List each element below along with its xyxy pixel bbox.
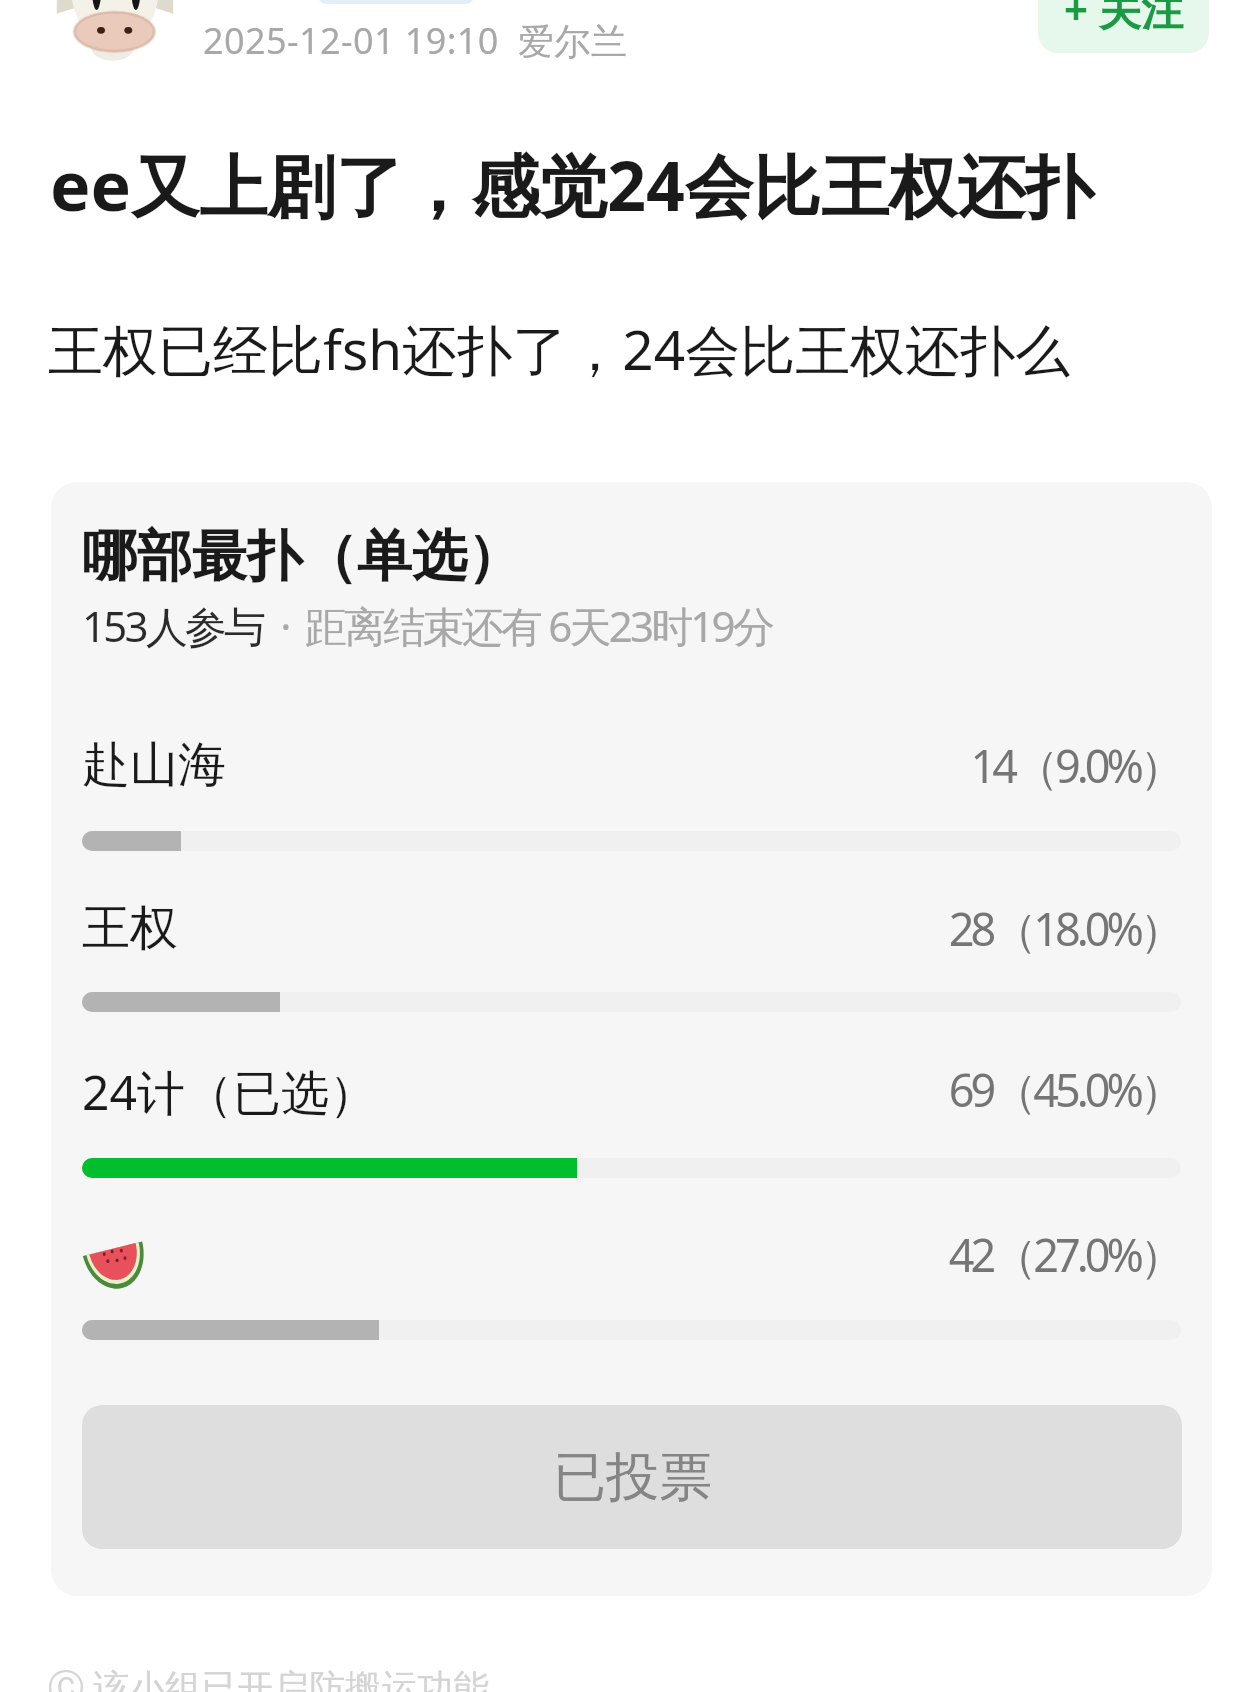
staticText: + 关注 [1064, 0, 1183, 37]
staticText: Ⓒ 该小组已开启防搬运功能 [48, 1662, 490, 1692]
staticText: 2025-12-01 19:10 爱尔兰 [203, 16, 628, 65]
button[interactable]: 王权 [82, 898, 1181, 1028]
button[interactable]: 已投票 [82, 1405, 1182, 1549]
staticText: 王权已经比fsh还扑了，24会比王权还扑么 [48, 311, 1071, 386]
staticText: 153人参与 [82, 597, 264, 654]
staticText: 赴山海 [82, 735, 226, 795]
staticText: · 距离结束还有 6天23时19分 [264, 597, 772, 654]
staticText: 已投票 [553, 1444, 712, 1511]
button[interactable]: 42（27.0%） [82, 1224, 1181, 1354]
staticText: 24计（已选） [82, 1059, 377, 1125]
button[interactable]: Avatar [56, 0, 174, 62]
button[interactable]: 赴山海 [82, 735, 1181, 865]
staticText: 69（45.0%） [82, 1059, 1181, 1120]
staticText: 哪部最扑（单选） [82, 522, 522, 591]
staticText: 42（27.0%） [82, 1224, 1181, 1285]
staticText: ee又上剧了，感觉24会比王权还扑 [50, 138, 1093, 231]
staticText: 王权 [82, 898, 178, 958]
button[interactable]: + 关注 [1038, 0, 1209, 53]
staticText: 28（18.0%） [82, 898, 1181, 959]
staticText: 14（9.0%） [82, 735, 1181, 796]
button[interactable]: 24计（已选） [82, 1059, 1181, 1189]
